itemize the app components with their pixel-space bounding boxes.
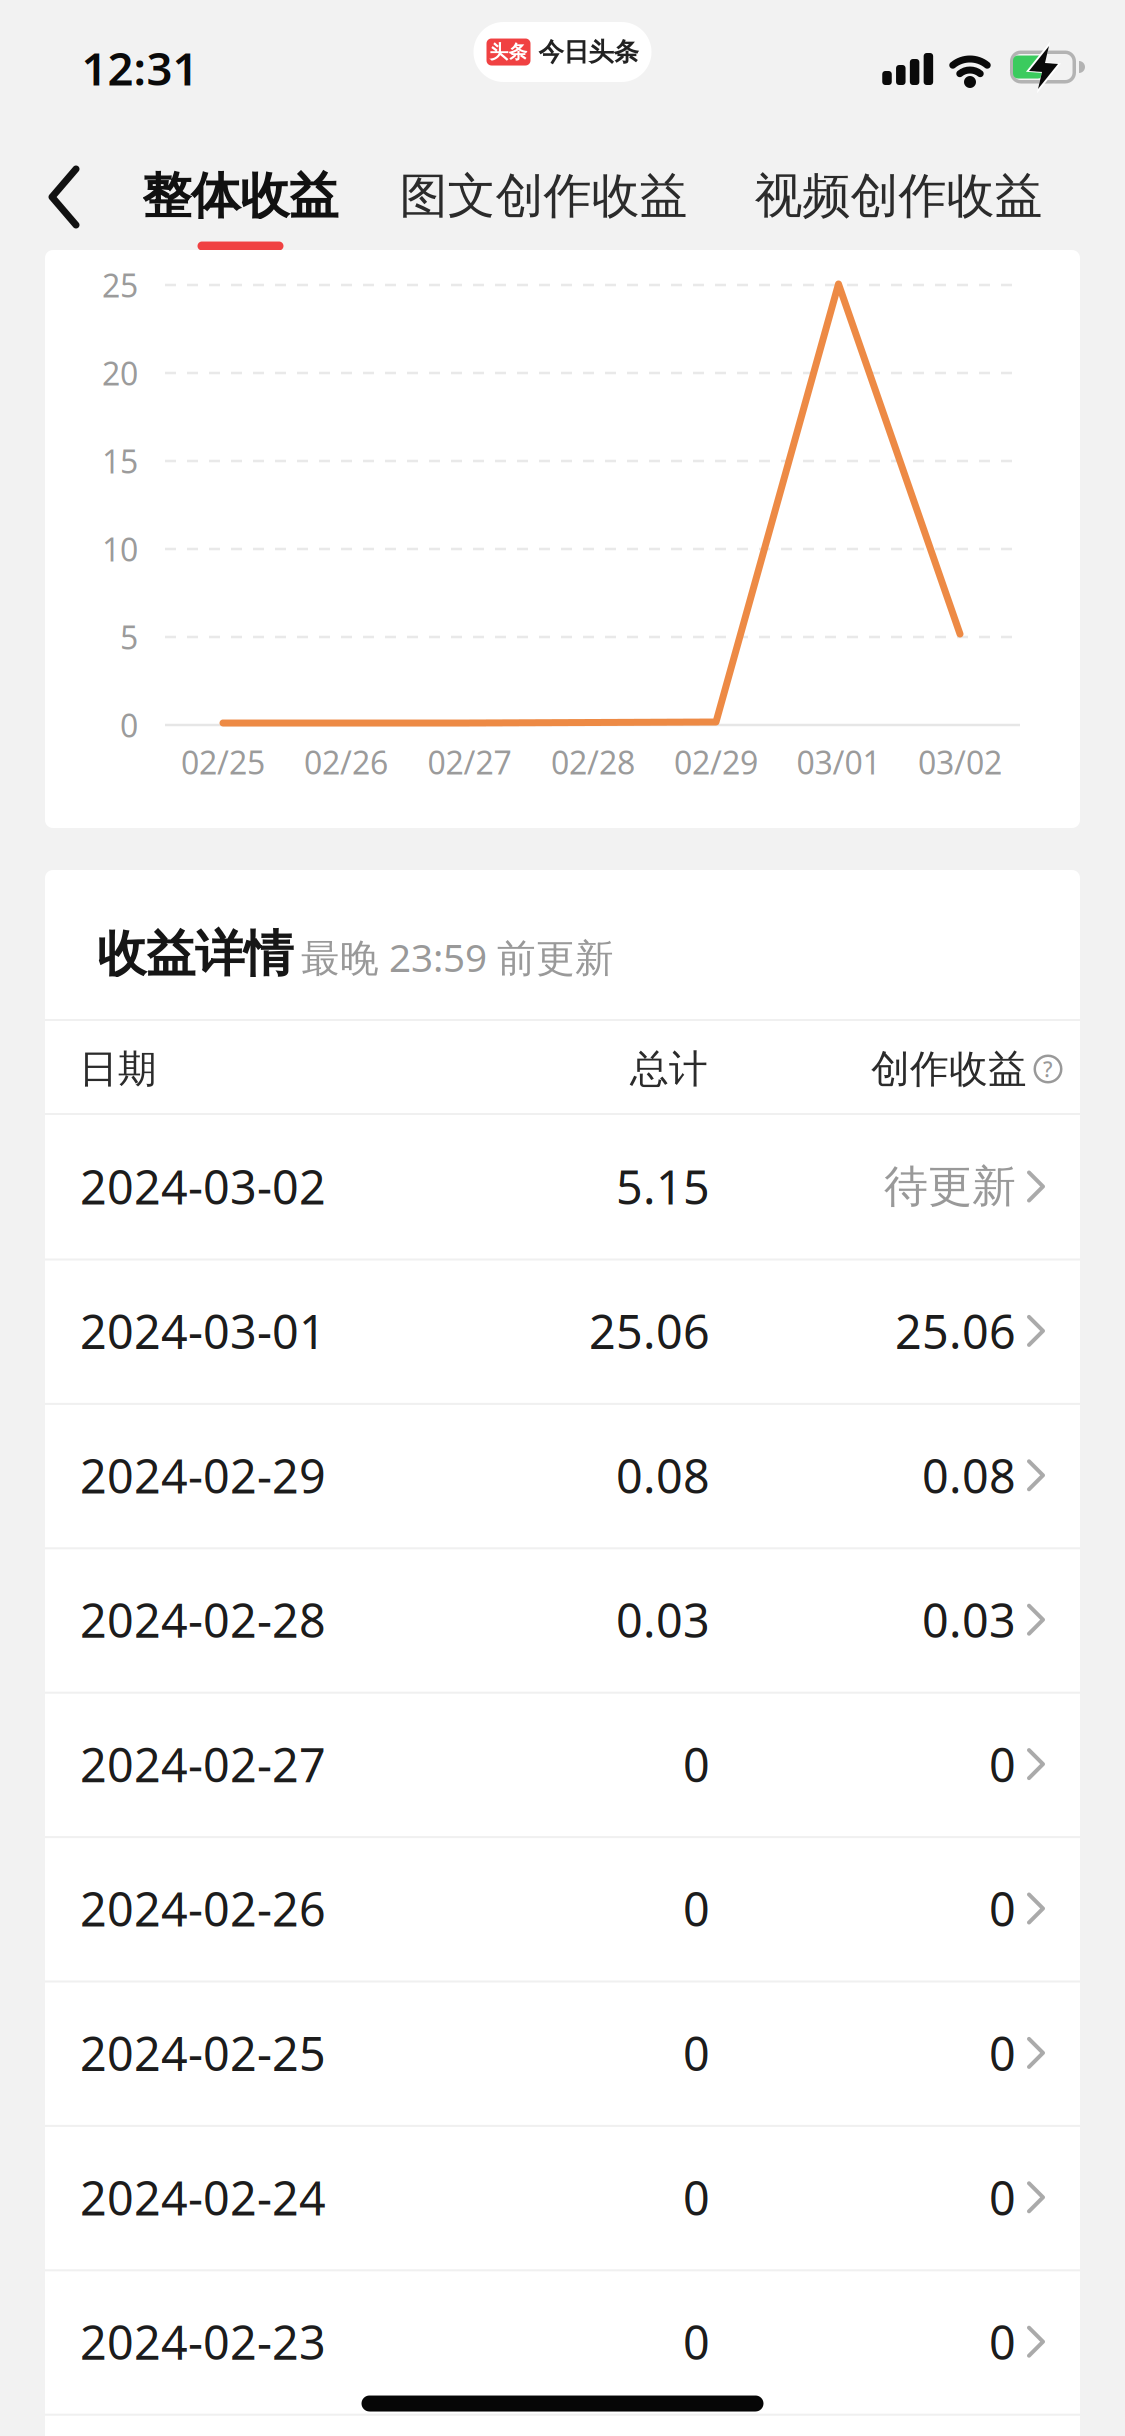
staticText: 头条 [489,40,527,63]
staticText: 2024-03-01 [80,1300,326,1362]
staticText: 0 [683,2022,710,2084]
staticText: 总计 [630,1045,708,1093]
staticText: 0 [989,2166,1016,2228]
staticText: 03/02 [918,741,1002,783]
button[interactable]: 2024-02-25 [45,1981,1080,2125]
staticText: 12:31 [81,38,198,98]
staticText: 25.06 [589,1300,710,1362]
staticText: 02/29 [674,741,758,783]
button[interactable]: 返回 [48,165,80,229]
button[interactable]: 创作收益说明 [1033,1054,1062,1083]
staticText: 2024-02-27 [80,1733,326,1795]
staticText: 整体收益 [142,166,338,226]
staticText: 0 [120,704,138,746]
staticText: 2024-02-29 [80,1444,326,1506]
staticText: 0 [683,1877,710,1939]
staticText: 0 [989,1733,1016,1795]
button[interactable]: 2024-02-27 [45,1692,1080,1836]
staticText: 25 [102,264,138,306]
staticText: 03/01 [796,741,880,783]
staticText: 15 [102,440,138,482]
button[interactable]: 2024-02-24 [45,2125,1080,2269]
staticText: 0.08 [616,1444,710,1506]
staticText: 25.06 [895,1300,1016,1362]
button[interactable]: 2024-02-29 [45,1403,1080,1547]
staticText: 2024-02-25 [80,2022,326,2084]
staticText: 收益详情 [97,924,293,984]
staticText: 02/28 [551,741,635,783]
staticText: 02/25 [181,741,265,783]
button[interactable]: 2024-02-28 [45,1548,1080,1692]
staticText: 最晚 23:59 前更新 [301,931,614,983]
staticText: 0 [683,1733,710,1795]
staticText: 2024-02-24 [80,2166,326,2228]
staticText: 0.08 [922,1444,1016,1506]
staticText: 创作收益 [871,1045,1027,1093]
staticText: 0 [683,2311,710,2373]
staticText: 日期 [79,1045,157,1093]
staticText: 0 [683,2166,710,2228]
staticText: 图文创作收益 [399,166,687,225]
staticText: 02/26 [304,741,388,783]
button[interactable]: 视频创作收益 [754,166,1042,225]
staticText: 0 [989,2022,1016,2084]
button[interactable]: 2024-02-23 [45,2270,1080,2414]
staticText: 5.15 [616,1155,710,1217]
button[interactable]: 2024-02-26 [45,1836,1080,1980]
button[interactable]: 2024-03-01 [45,1259,1080,1403]
staticText: 2024-02-23 [80,2311,326,2373]
staticText: 02/27 [427,741,511,783]
staticText: 2024-02-28 [80,1589,326,1651]
staticText: 10 [102,528,138,570]
staticText: 0 [989,2311,1016,2373]
staticText: 5 [120,616,138,658]
staticText: 0.03 [616,1589,710,1651]
staticText: 待更新 [884,1159,1016,1213]
button[interactable]: 整体收益 [142,166,338,226]
staticText: 2024-02-26 [80,1877,326,1939]
staticText: 今日头条 [538,36,638,67]
button[interactable]: 2024-03-02 [45,1114,1080,1258]
staticText: ? [1043,1055,1053,1083]
staticText: 0 [989,1877,1016,1939]
button[interactable]: 图文创作收益 [399,166,687,225]
staticText: 20 [102,352,138,394]
staticText: 0.03 [922,1589,1016,1651]
staticText: 视频创作收益 [754,166,1042,225]
staticText: 2024-03-02 [80,1155,326,1217]
